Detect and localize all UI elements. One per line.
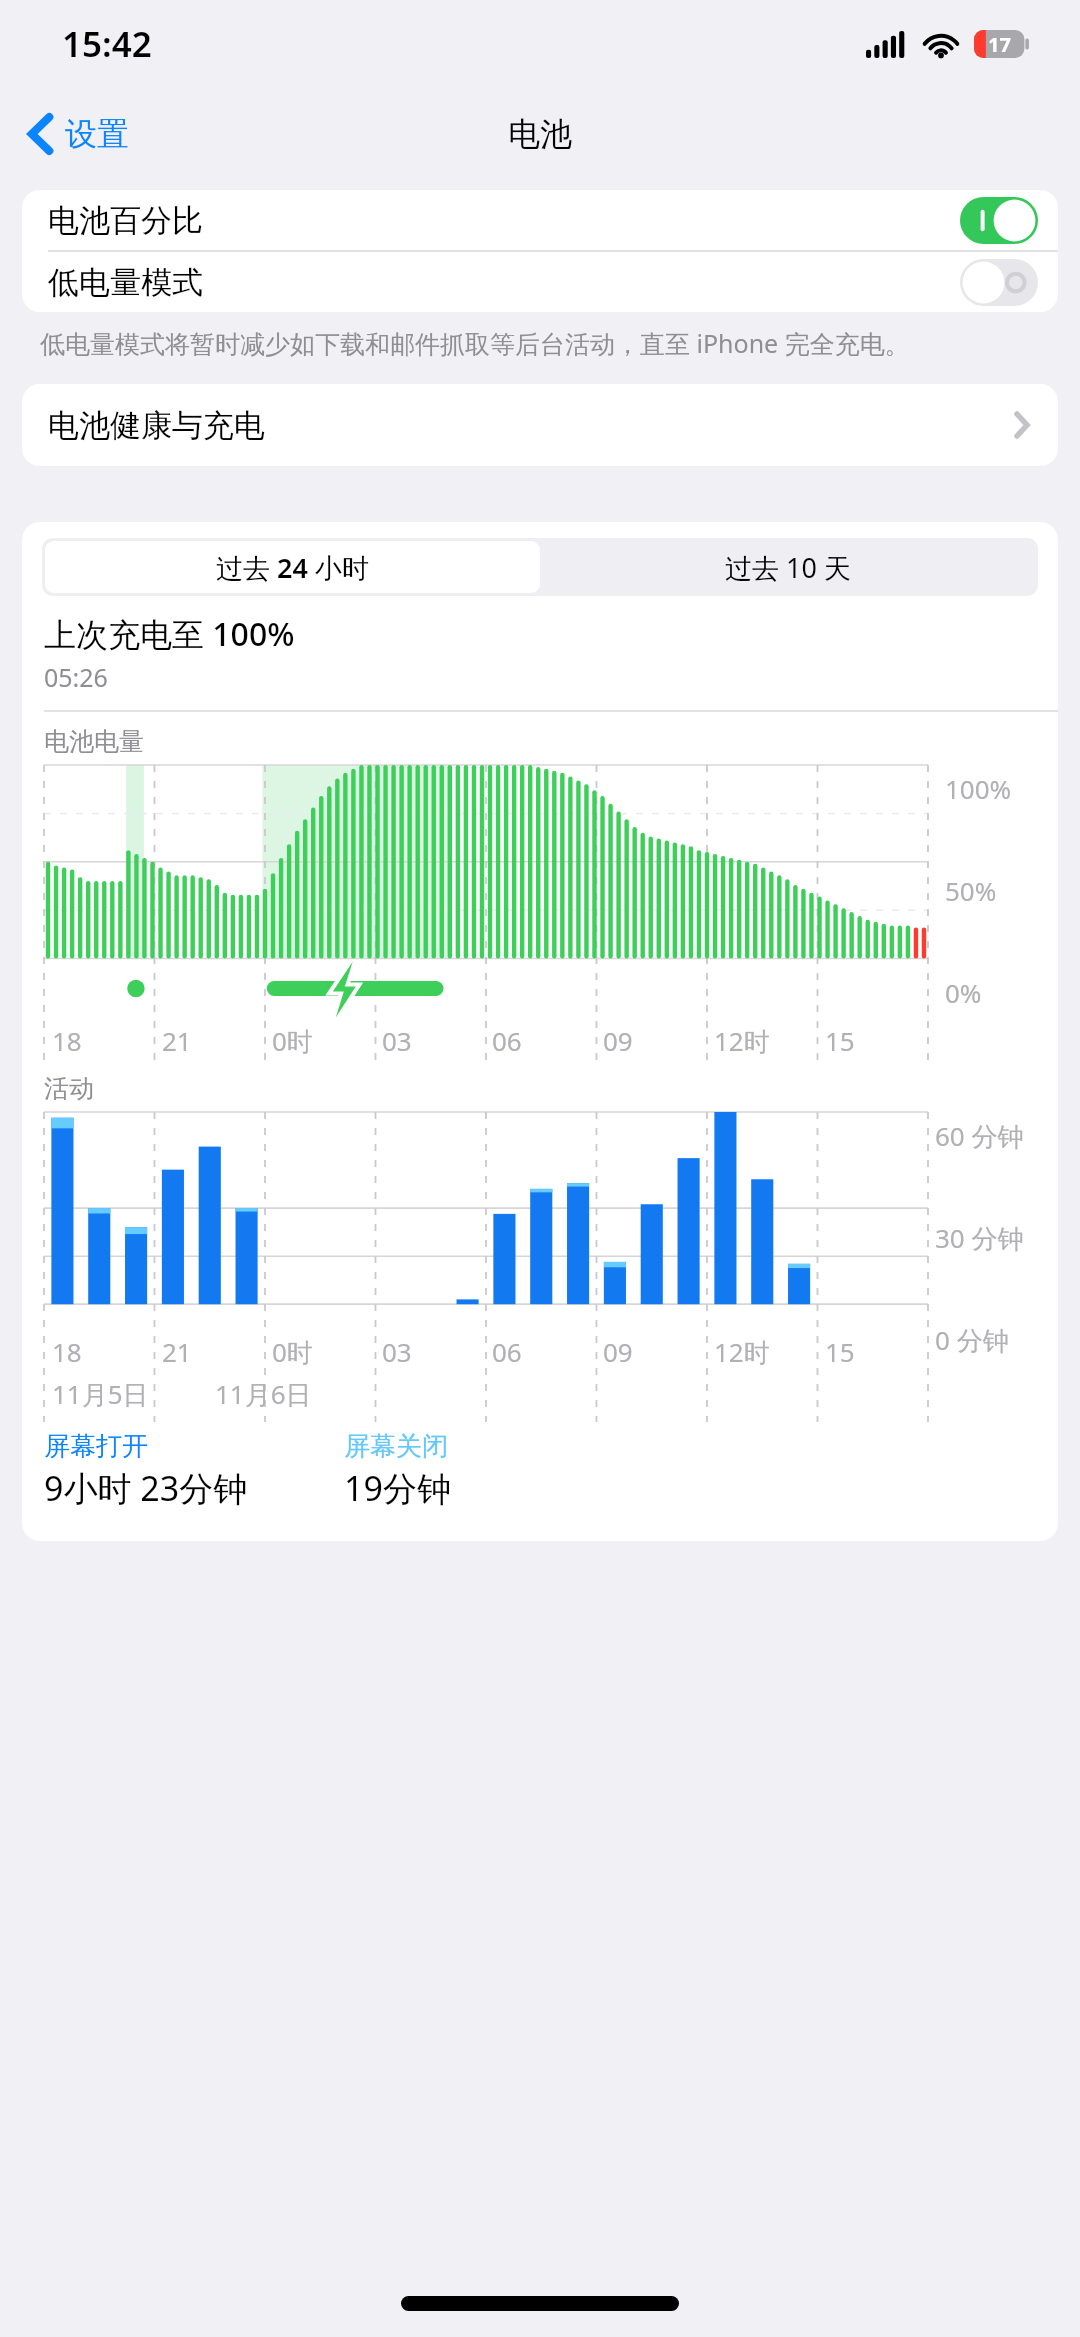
staticText: 03 — [382, 1334, 412, 1369]
staticText: 15:42 — [62, 20, 152, 68]
staticText: 11月6日 — [215, 1376, 312, 1412]
staticText: 17 — [988, 31, 1011, 58]
staticText: 0% — [945, 975, 982, 1010]
staticText: 09 — [603, 1023, 633, 1058]
staticText: 06 — [492, 1334, 522, 1369]
staticText: 低电量模式将暂时减少如下载和邮件抓取等后台活动，直至 iPhone 完全充电。 — [40, 326, 910, 360]
staticText: 12时 — [714, 1334, 770, 1370]
staticText: 电池健康与充电 — [48, 406, 265, 445]
staticText: 过去 10 天 — [725, 549, 851, 586]
staticText: 屏幕打开 — [44, 1430, 148, 1463]
staticText: 电池百分比 — [48, 201, 203, 240]
staticText: 电池 — [508, 114, 572, 154]
button[interactable]: 已关闭 — [960, 259, 1038, 306]
button[interactable]: 电池百分比 — [22, 190, 1058, 250]
staticText: 21 — [162, 1023, 192, 1058]
staticText: 18 — [52, 1334, 82, 1369]
staticText: 9小时 23分钟 — [44, 1465, 248, 1511]
button[interactable]: 电池健康与充电 — [22, 384, 1058, 466]
button[interactable]: 过去 10 天 — [540, 541, 1035, 593]
staticText: 100% — [945, 771, 1012, 806]
staticText: 15 — [825, 1334, 855, 1369]
staticText: 18 — [52, 1023, 82, 1058]
staticText: 上次充电至 100% — [44, 612, 295, 656]
staticText: 过去 24 小时 — [216, 549, 369, 586]
button[interactable]: 已开启 — [960, 197, 1038, 244]
staticText: 11月5日 — [52, 1376, 149, 1412]
staticText: 设置 — [65, 114, 129, 154]
staticText: 60 分钟 — [935, 1118, 1024, 1154]
staticText: 0时 — [272, 1023, 313, 1059]
staticText: 电池电量 — [44, 726, 144, 757]
staticText: 0 分钟 — [935, 1322, 1009, 1358]
staticText: 15 — [825, 1023, 855, 1058]
staticText: 19分钟 — [344, 1465, 451, 1511]
staticText: 50% — [945, 873, 997, 908]
staticText: 低电量模式 — [48, 263, 203, 302]
staticText: 屏幕关闭 — [344, 1430, 448, 1463]
staticText: 活动 — [44, 1073, 94, 1104]
staticText: 30 分钟 — [935, 1220, 1024, 1256]
button[interactable]: 过去 24 小时 — [45, 541, 540, 593]
staticText: 12时 — [714, 1023, 770, 1059]
button[interactable]: 低电量模式 — [22, 252, 1058, 312]
staticText: 21 — [162, 1334, 192, 1369]
staticText: 05:26 — [44, 660, 108, 694]
staticText: 06 — [492, 1023, 522, 1058]
staticText: 09 — [603, 1334, 633, 1369]
staticText: 0时 — [272, 1334, 313, 1370]
staticText: 03 — [382, 1023, 412, 1058]
button[interactable]: 设置 — [20, 108, 139, 160]
